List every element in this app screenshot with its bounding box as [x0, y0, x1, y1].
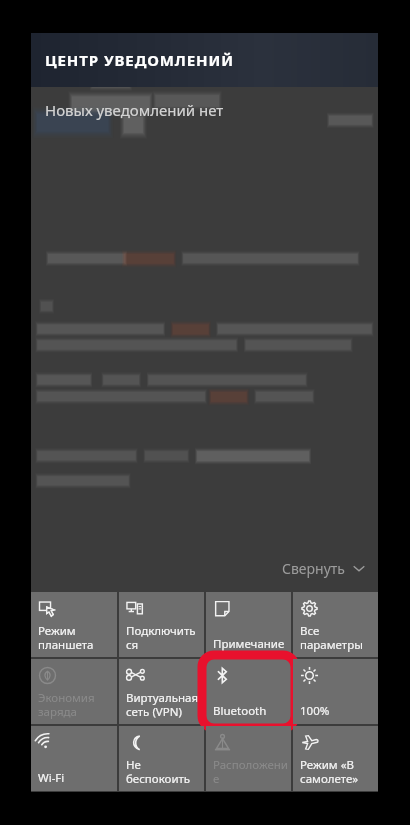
staticText: Bluetooth — [213, 703, 267, 719]
staticText: Экономия заряда — [38, 690, 95, 719]
button[interactable]: Не беспокоить — [119, 726, 204, 791]
button[interactable]: Все параметры — [293, 592, 378, 657]
staticText: Свернуть — [282, 559, 345, 578]
button[interactable]: Подключиться — [119, 592, 204, 657]
button[interactable]: Примечание — [206, 592, 291, 657]
staticText: 100% — [300, 703, 330, 719]
staticText: Режим «В самолете» — [300, 757, 359, 786]
button[interactable]: Режим «В самолете» — [293, 726, 378, 791]
staticText: Новых уведомлений нет — [45, 100, 224, 120]
staticText: Расположение — [213, 757, 288, 786]
button[interactable]: Виртуальная сеть (VPN) — [119, 659, 204, 724]
staticText: Режим планшета — [38, 623, 94, 652]
staticText: Не беспокоить — [126, 757, 191, 786]
button[interactable]: Свернуть — [31, 550, 378, 586]
button[interactable]: Экономия заряда — [31, 659, 117, 724]
button[interactable]: Расположение — [206, 726, 291, 791]
staticText: Wi-Fi — [38, 770, 65, 786]
button[interactable]: Wi-Fi — [31, 726, 117, 791]
staticText: Примечание — [213, 636, 285, 652]
button[interactable]: 100% — [293, 659, 378, 724]
staticText: ЦЕНТР УВЕДОМЛЕНИЙ — [45, 50, 234, 70]
button[interactable]: Режим планшета — [31, 592, 117, 657]
button[interactable]: Bluetooth — [206, 659, 291, 724]
staticText: Подключиться — [126, 623, 201, 652]
staticText: Виртуальная сеть (VPN) — [126, 690, 199, 719]
staticText: Все параметры — [300, 623, 363, 652]
